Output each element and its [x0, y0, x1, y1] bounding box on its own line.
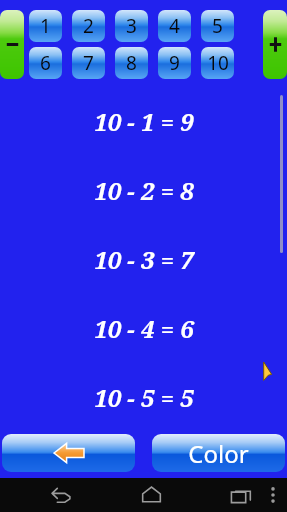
button[interactable]: 8	[115, 47, 148, 79]
staticText: 10 - 2 = 8	[94, 174, 194, 207]
button[interactable]: 10 - 4 = 6	[0, 311, 287, 345]
staticText: 10	[207, 50, 229, 76]
button[interactable]: 1	[29, 10, 62, 42]
button[interactable]: Back	[44, 478, 78, 512]
button[interactable]: Back	[2, 434, 135, 472]
button[interactable]: 3	[115, 10, 148, 42]
button[interactable]: 5	[201, 10, 234, 42]
button[interactable]: 10 - 1 = 9	[0, 104, 287, 138]
button[interactable]: 10	[201, 47, 234, 79]
button[interactable]: 2	[72, 10, 105, 42]
button[interactable]: More options	[258, 478, 287, 512]
staticText: 10 - 3 = 7	[94, 243, 194, 276]
staticText: 10 - 1 = 9	[94, 105, 194, 138]
staticText: 1	[40, 13, 51, 39]
button[interactable]: 10 - 2 = 8	[0, 173, 287, 207]
button[interactable]: Home	[134, 478, 168, 512]
button[interactable]: 4	[158, 10, 191, 42]
button[interactable]: Recents	[224, 478, 258, 512]
staticText: 7	[83, 50, 94, 76]
button[interactable]: 10 - 5 = 5	[0, 380, 287, 414]
staticText: 4	[169, 13, 180, 39]
staticText: 5	[212, 13, 223, 39]
button[interactable]: Minus	[0, 10, 24, 79]
staticText: 8	[126, 50, 137, 76]
staticText: Color	[188, 437, 249, 470]
staticText: 6	[40, 50, 51, 76]
button[interactable]: Plus	[263, 10, 287, 79]
button[interactable]: 10 - 3 = 7	[0, 242, 287, 276]
button[interactable]: 6	[29, 47, 62, 79]
staticText: 3	[126, 13, 137, 39]
button[interactable]: 9	[158, 47, 191, 79]
staticText: 9	[169, 50, 180, 76]
staticText: 10 - 5 = 5	[94, 381, 194, 414]
staticText: 10 - 4 = 6	[94, 312, 194, 345]
button[interactable]: 7	[72, 47, 105, 79]
button[interactable]: Color	[152, 434, 285, 472]
staticText: 2	[83, 13, 94, 39]
